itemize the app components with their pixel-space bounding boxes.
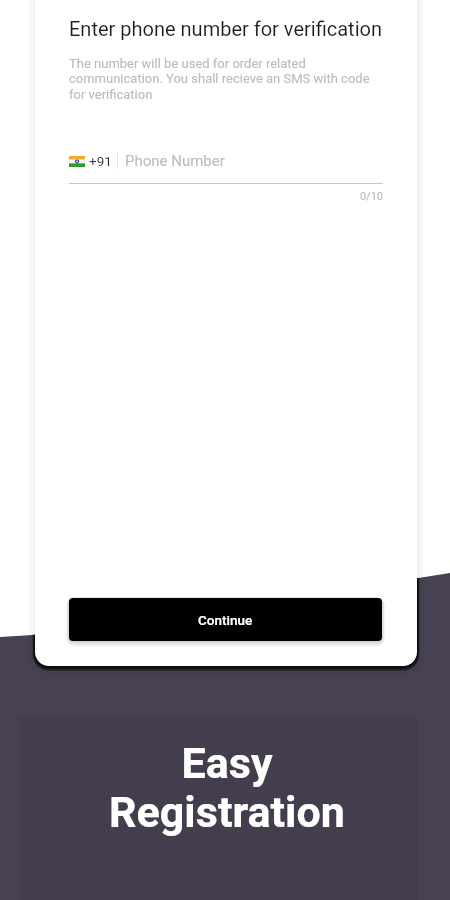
staticText: The number will be used for order relate… bbox=[69, 56, 383, 103]
staticText: 0/10 bbox=[69, 190, 383, 203]
button[interactable]: Select country code, India +91 bbox=[69, 153, 112, 169]
staticText: Phone Number bbox=[125, 152, 225, 170]
staticText: Continue bbox=[198, 612, 253, 628]
staticText: +91 bbox=[89, 153, 112, 169]
staticText: Easy Registration bbox=[2, 738, 450, 837]
button[interactable]: Continue bbox=[69, 598, 382, 641]
button[interactable]: Phone Number bbox=[125, 152, 383, 170]
staticText: Enter phone number for verification bbox=[69, 17, 382, 40]
